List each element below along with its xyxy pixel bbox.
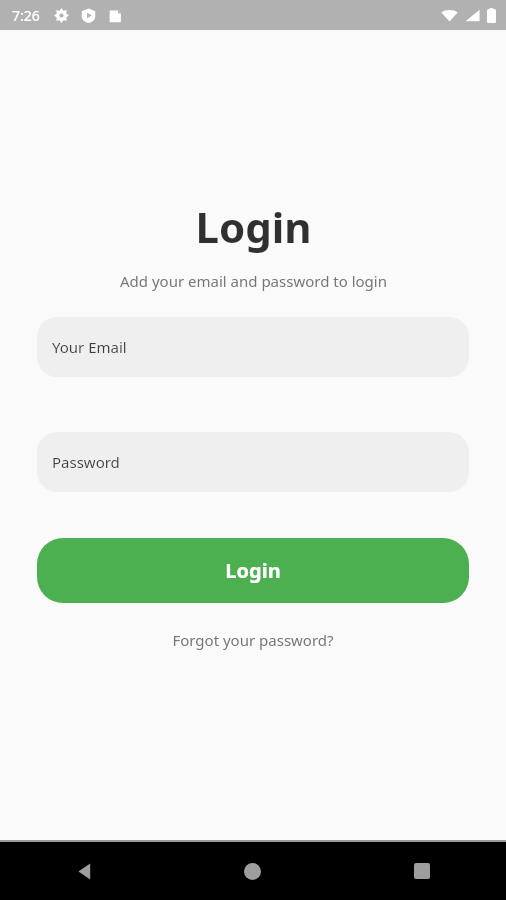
staticText: 7:26 [12, 6, 40, 25]
button[interactable]: Forgot your password? [164, 626, 342, 654]
button[interactable]: Recent apps [337, 842, 506, 900]
button[interactable]: Login [37, 538, 469, 603]
staticText: Login [195, 198, 312, 255]
staticText: Add your email and password to login [120, 271, 387, 291]
button[interactable]: Your Email [37, 317, 469, 377]
button[interactable]: Password [37, 432, 469, 492]
staticText: Forgot your password? [172, 630, 334, 650]
staticText: Password [52, 452, 120, 472]
button[interactable]: Home [168, 842, 337, 900]
staticText: Your Email [52, 337, 127, 357]
staticText: Login [225, 557, 281, 584]
button[interactable]: Back [0, 842, 168, 900]
